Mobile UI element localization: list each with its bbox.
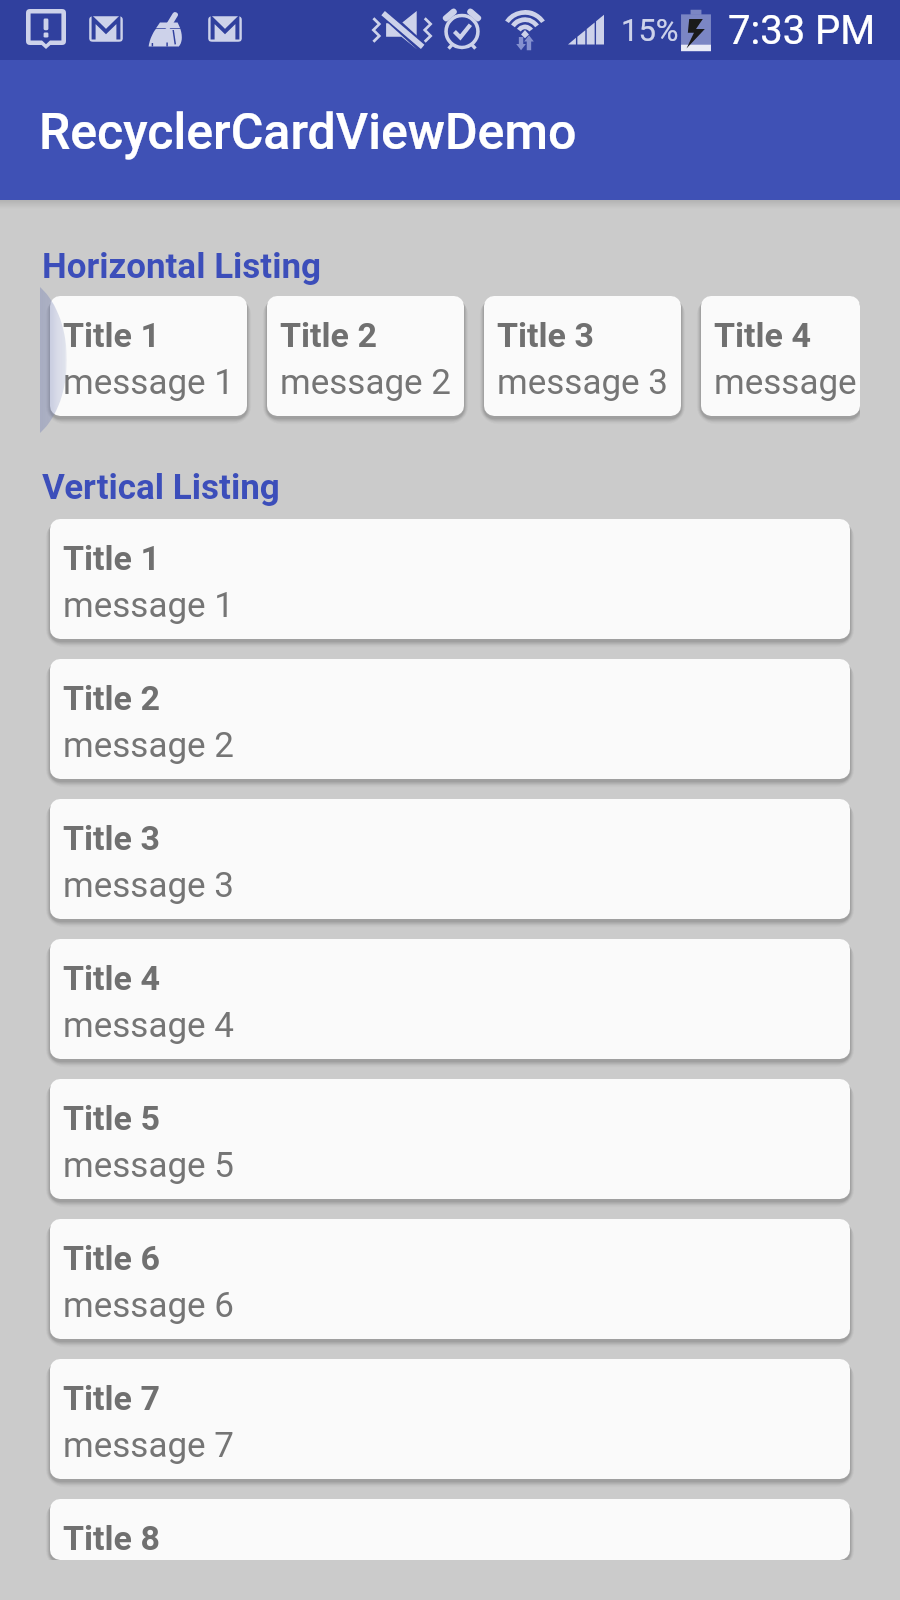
other: System alert notification	[26, 9, 66, 49]
staticText: message 5	[63, 1145, 234, 1186]
button[interactable]: Title 2	[267, 296, 464, 416]
button[interactable]: Title 5	[50, 1079, 850, 1199]
staticText: message 6	[63, 1285, 234, 1326]
staticText: message 1	[63, 362, 234, 403]
button[interactable]: Title 3	[50, 799, 850, 919]
button[interactable]: Title 4	[50, 939, 850, 1059]
button[interactable]: Title 4	[701, 296, 860, 416]
staticText: Title 4	[714, 315, 811, 355]
button[interactable]: Title 8	[50, 1499, 850, 1560]
staticText: Title 7	[63, 1378, 160, 1418]
staticText: Title 2	[63, 678, 160, 718]
staticText: Horizontal Listing	[42, 246, 322, 287]
other: Alarm set	[441, 8, 483, 50]
staticText: Title 3	[63, 818, 160, 858]
staticText: Vertical Listing	[42, 467, 280, 508]
staticText: Title 5	[63, 1098, 160, 1138]
other: Cleaner notification	[144, 9, 186, 51]
other: Gmail notification	[205, 9, 245, 49]
staticText: message 4	[63, 1005, 234, 1046]
button[interactable]: Title 3	[484, 296, 681, 416]
other: Mobile signal strength	[566, 10, 606, 50]
staticText: Title 4	[63, 958, 160, 998]
button[interactable]: Title 6	[50, 1219, 850, 1339]
button[interactable]: Title 1	[50, 519, 850, 639]
button[interactable]: Title 2	[50, 659, 850, 779]
staticText: RecyclerCardViewDemo	[39, 103, 577, 162]
staticText: Title 1	[63, 315, 160, 355]
staticText: message 4	[714, 362, 860, 403]
staticText: Title 1	[63, 538, 160, 578]
staticText: Title 2	[280, 315, 377, 355]
button[interactable]: Title 7	[50, 1359, 850, 1479]
staticText: message 1	[63, 585, 234, 626]
staticText: message 2	[280, 362, 451, 403]
staticText: 15%	[621, 12, 679, 48]
other: Battery 15 percent, charging	[679, 7, 713, 53]
staticText: message 2	[63, 725, 234, 766]
staticText: message 7	[63, 1425, 234, 1466]
staticText: message 3	[63, 865, 234, 906]
other: Gmail notification	[86, 9, 126, 49]
staticText: 7:33 PM	[728, 7, 876, 54]
staticText: Title 3	[497, 315, 594, 355]
staticText: message 3	[497, 362, 668, 403]
other: Wi-Fi connected	[503, 8, 547, 52]
staticText: Title 6	[63, 1238, 160, 1278]
other: Ringer muted, vibrate	[372, 9, 432, 51]
button[interactable]: Title 1	[50, 296, 247, 416]
staticText: Title 8	[63, 1518, 160, 1558]
